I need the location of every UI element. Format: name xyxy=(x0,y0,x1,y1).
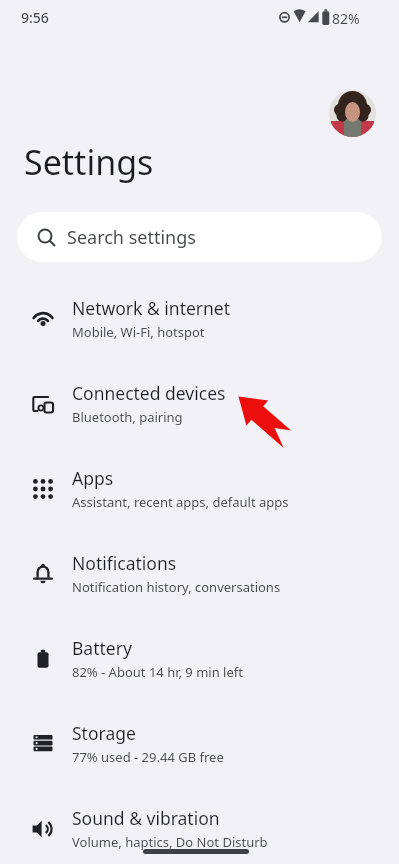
button[interactable]: Battery xyxy=(0,616,399,701)
staticText: 82% xyxy=(332,9,360,28)
staticText: Network & internet xyxy=(72,296,231,320)
staticText: Assistant, recent apps, default apps xyxy=(72,493,289,511)
staticText: 77% used - 29.44 GB free xyxy=(72,748,224,766)
staticText: Notifications xyxy=(72,551,177,575)
staticText: 9:56 xyxy=(21,8,49,27)
staticText: Storage xyxy=(72,721,136,745)
staticText: Battery xyxy=(72,636,132,660)
staticText: Notification history, conversations xyxy=(72,578,281,596)
staticText: Mobile, Wi-Fi, hotspot xyxy=(72,323,205,341)
staticText: 82% - About 14 hr, 9 min left xyxy=(72,663,243,681)
button[interactable]: Network & internet xyxy=(0,276,399,361)
button[interactable]: Notifications xyxy=(0,531,399,616)
button[interactable]: Connected devices xyxy=(0,361,399,446)
button[interactable]: Sound & vibration xyxy=(0,786,399,864)
button[interactable] xyxy=(329,90,376,137)
button[interactable]: Search settings xyxy=(17,212,382,262)
staticText: Bluetooth, pairing xyxy=(72,408,183,426)
staticText: Sound & vibration xyxy=(72,806,220,830)
staticText: Connected devices xyxy=(72,381,226,405)
button[interactable]: Apps xyxy=(0,446,399,531)
staticText: Volume, haptics, Do Not Disturb xyxy=(72,833,268,851)
button[interactable]: Storage xyxy=(0,701,399,786)
staticText: Settings xyxy=(24,139,154,185)
staticText: Search settings xyxy=(67,225,196,250)
staticText: Apps xyxy=(72,466,114,490)
